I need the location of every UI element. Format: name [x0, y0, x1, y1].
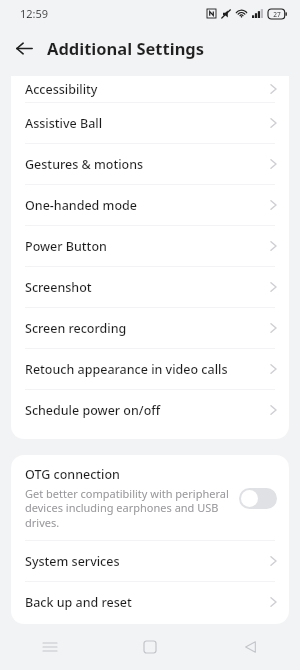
button[interactable]: Screenshot — [11, 267, 289, 307]
button[interactable]: System services — [11, 541, 289, 581]
button[interactable]: Recent apps — [0, 624, 100, 670]
staticText: 27 — [273, 10, 281, 19]
button[interactable]: Retouch appearance in video calls — [11, 349, 289, 389]
staticText: Accessibility — [25, 81, 270, 98]
staticText: Get better compatibility with peripheral… — [25, 486, 231, 531]
staticText: One-handed mode — [25, 197, 270, 214]
button[interactable]: Power Button — [11, 226, 289, 266]
staticText: Screenshot — [25, 279, 270, 296]
staticText: 12:59 — [20, 6, 49, 21]
staticText: Schedule power on/off — [25, 402, 270, 419]
staticText: System services — [25, 553, 270, 570]
button[interactable]: Screen recording — [11, 308, 289, 348]
button[interactable]: Accessibility — [11, 76, 289, 102]
button[interactable]: Assistive Ball — [11, 103, 289, 143]
button[interactable]: Back — [200, 624, 300, 670]
button[interactable]: Back — [8, 32, 40, 64]
staticText: Screen recording — [25, 320, 270, 337]
button[interactable]: Gestures & motions — [11, 144, 289, 184]
staticText: Assistive Ball — [25, 115, 270, 132]
staticText: Power Button — [25, 238, 270, 255]
button[interactable]: Home — [100, 624, 200, 670]
staticText: Back up and reset — [25, 594, 270, 611]
staticText: Retouch appearance in video calls — [25, 361, 270, 378]
button[interactable]: OTG connection toggle — [239, 488, 277, 509]
staticText: Gestures & motions — [25, 156, 270, 173]
button[interactable]: Back up and reset — [11, 582, 289, 622]
staticText: OTG connection — [25, 466, 120, 483]
button[interactable]: One-handed mode — [11, 185, 289, 225]
button[interactable]: OTG connection — [11, 455, 289, 540]
button[interactable]: Schedule power on/off — [11, 390, 289, 430]
staticText: Additional Settings — [47, 37, 205, 59]
